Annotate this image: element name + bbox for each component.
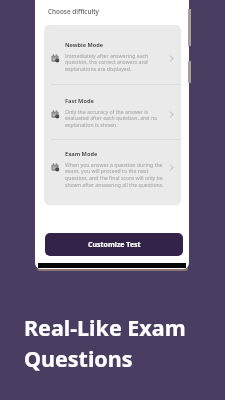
- staticText: Newbie Mode: [65, 41, 104, 49]
- staticText: Fast Mode: [65, 97, 94, 105]
- button[interactable]: Fast Mode: [44, 85, 181, 139]
- staticText: Real-Like Exam Questions: [24, 313, 186, 374]
- button[interactable]: Newbie Mode: [44, 25, 181, 84]
- staticText: Immediately after answering each questio…: [65, 52, 166, 73]
- other: Open: [168, 163, 176, 172]
- staticText: Customize Test: [88, 240, 141, 250]
- other: Open: [168, 110, 176, 119]
- staticText: When you answer a question during the ex…: [65, 161, 166, 189]
- button[interactable]: Exam Mode: [44, 140, 181, 200]
- staticText: Only the accuracy of the answer is evalu…: [65, 108, 166, 129]
- other: Open: [168, 54, 176, 63]
- staticText: Choose difficulty: [48, 7, 99, 16]
- staticText: Exam Mode: [65, 150, 98, 158]
- button[interactable]: Customize Test: [45, 233, 183, 256]
